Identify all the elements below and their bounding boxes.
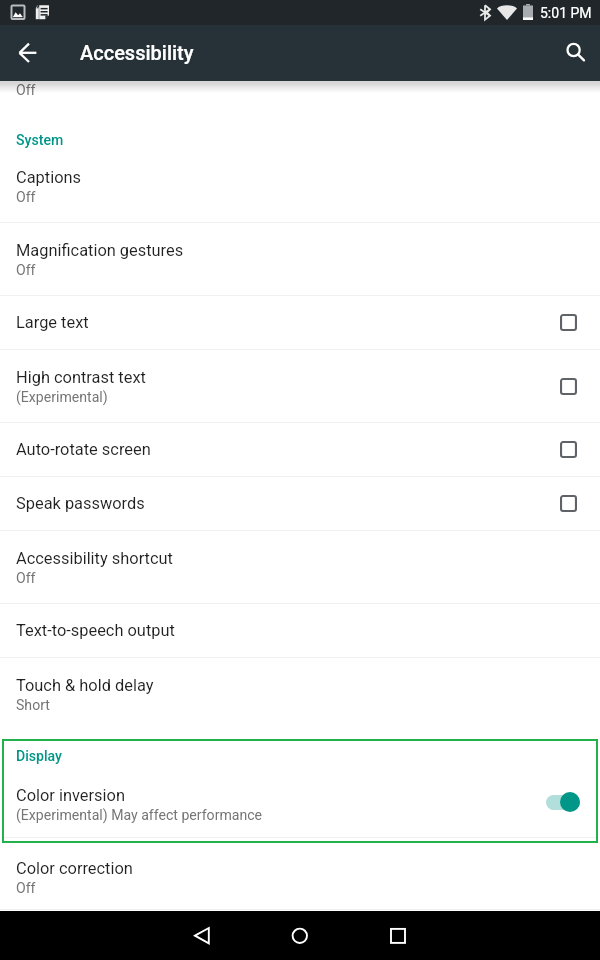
staticText: Short [16,697,50,714]
staticText: Off [16,262,36,279]
button[interactable]: Text-to-speech output [0,604,600,657]
button[interactable]: Color inversion [2,772,598,836]
button[interactable]: Magnification gestures [0,223,600,295]
staticText: Captions [16,168,81,187]
staticText: Text-to-speech output [16,621,175,640]
staticText: System [16,132,64,149]
button[interactable]: System [16,132,64,149]
staticText: Touch & hold delay [16,676,154,695]
staticText: Accessibility [80,41,194,64]
button[interactable]: High contrast text [0,350,600,422]
staticText: Large text [16,313,89,332]
button[interactable]: Recent apps [361,911,435,960]
staticText: Off [16,82,36,99]
button[interactable]: Color correction [0,845,600,909]
button[interactable]: Search [552,25,600,81]
staticText: Color correction [16,859,133,878]
button[interactable]: Large text [0,296,600,349]
staticText: Off [16,570,36,587]
staticText: Off [16,189,36,206]
button[interactable]: Navigate up [0,25,48,81]
button[interactable]: Home [263,911,337,960]
staticText: Speak passwords [16,494,145,513]
staticText: (Experimental) May affect performance [16,807,263,824]
button[interactable]: Back [162,911,236,960]
button[interactable]: Accessibility shortcut [0,531,600,603]
button[interactable]: Captions [0,150,600,222]
staticText: Accessibility shortcut [16,549,173,568]
staticText: Color inversion [16,786,125,805]
staticText: Magnification gestures [16,241,184,260]
staticText: Display [16,748,62,765]
button[interactable]: Display [16,748,62,765]
button[interactable]: Touch & hold delay [0,658,600,730]
button[interactable]: Auto-rotate screen [0,423,600,476]
button[interactable]: Speak passwords [0,477,600,530]
staticText: (Experimental) [16,389,108,406]
staticText: High contrast text [16,368,146,387]
staticText: Auto-rotate screen [16,440,151,459]
staticText: 5:01 PM [540,5,592,21]
staticText: Off [16,880,36,897]
